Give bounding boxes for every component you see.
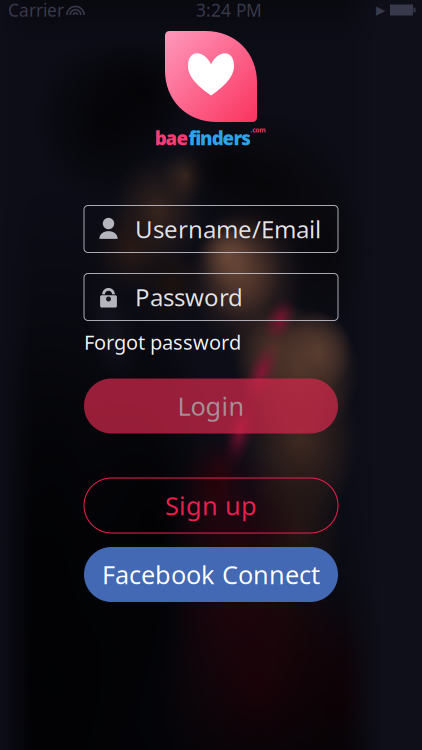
- staticText: 3:24 PM: [196, 0, 262, 21]
- staticText: Sign up: [165, 489, 257, 522]
- staticText: bae: [155, 126, 188, 150]
- button[interactable]: Sign up: [84, 478, 338, 533]
- staticText: Password: [135, 281, 243, 313]
- button[interactable]: Login: [84, 378, 338, 433]
- button[interactable]: Username/Email: [84, 205, 338, 252]
- staticText: finders: [188, 126, 251, 150]
- staticText: Facebook Connect: [102, 558, 320, 591]
- staticText: ▶: [376, 3, 385, 17]
- staticText: .com: [250, 126, 266, 134]
- button[interactable]: Forgot password: [84, 331, 338, 353]
- staticText: Username/Email: [135, 213, 321, 245]
- staticText: Carrier: [8, 0, 64, 21]
- button[interactable]: Password: [84, 273, 338, 320]
- button[interactable]: Facebook Connect: [84, 547, 338, 602]
- staticText: Login: [177, 389, 244, 423]
- staticText: Forgot password: [84, 329, 241, 355]
